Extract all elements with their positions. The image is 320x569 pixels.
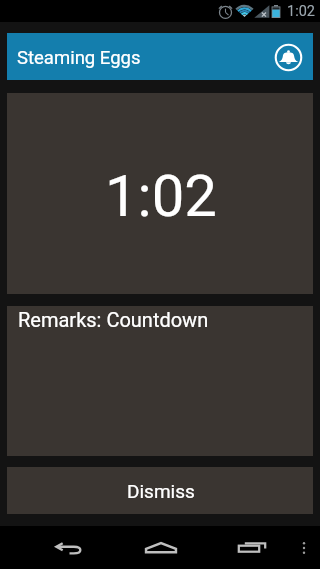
staticText: 1:02 bbox=[287, 3, 315, 20]
button[interactable]: Home bbox=[115, 526, 207, 569]
staticText: 1:02 bbox=[105, 162, 217, 230]
button[interactable]: Recent apps bbox=[207, 526, 296, 569]
button[interactable]: Dismiss bbox=[7, 467, 313, 514]
button[interactable]: Alarm bbox=[271, 40, 305, 74]
button[interactable]: Back bbox=[23, 526, 115, 569]
staticText: Dismiss bbox=[127, 480, 195, 502]
button[interactable]: More options bbox=[300, 526, 307, 569]
staticText: Remarks: Countdown bbox=[18, 308, 209, 331]
staticText: Steaming Eggs bbox=[17, 47, 141, 69]
button[interactable]: Steaming Eggs bbox=[7, 33, 313, 80]
